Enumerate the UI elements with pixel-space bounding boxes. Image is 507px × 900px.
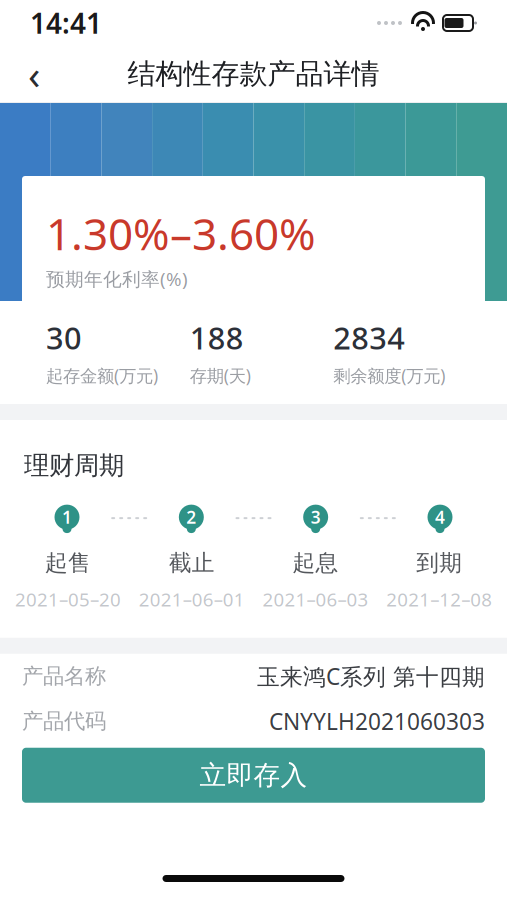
staticText: 起息 xyxy=(292,549,338,577)
staticText: 2021–05–20 xyxy=(15,587,121,612)
staticText: 理财周期 xyxy=(24,450,124,481)
staticText: 1 xyxy=(62,506,72,529)
staticText: 1.30%–3.60% xyxy=(46,204,316,262)
staticText: ‹ xyxy=(28,47,40,100)
staticText: 结构性存款产品详情 xyxy=(127,57,379,91)
staticText: 立即存入 xyxy=(199,759,307,792)
staticText: 产品名称 xyxy=(22,663,106,689)
button[interactable]: Back xyxy=(12,52,56,96)
staticText: 3 xyxy=(311,506,321,529)
staticText: 产品代码 xyxy=(22,708,106,734)
staticText: 玉来鸿C系列 第十四期 xyxy=(257,661,485,691)
staticText: CNYYLH2021060303 xyxy=(269,706,485,736)
staticText: 2021–12–08 xyxy=(386,587,492,612)
button[interactable]: 立即存入 xyxy=(22,748,485,803)
staticText: 188 xyxy=(190,317,244,358)
staticText: 2 xyxy=(186,506,196,529)
staticText: 剩余额度(万元) xyxy=(333,364,445,387)
staticText: 起存金额(万元) xyxy=(46,364,158,387)
staticText: 2021–06–03 xyxy=(262,587,368,612)
staticText: 存期(天) xyxy=(190,364,251,387)
staticText: 4 xyxy=(435,506,445,529)
staticText: 30 xyxy=(46,317,82,358)
staticText: 起售 xyxy=(45,549,91,577)
staticText: 预期年化利率(%) xyxy=(46,266,188,291)
staticText: 2834 xyxy=(333,317,405,358)
staticText: 14:41 xyxy=(30,4,102,42)
staticText: 截止 xyxy=(169,549,215,577)
staticText: 到期 xyxy=(416,549,462,577)
staticText: 2021–06–01 xyxy=(139,587,245,612)
